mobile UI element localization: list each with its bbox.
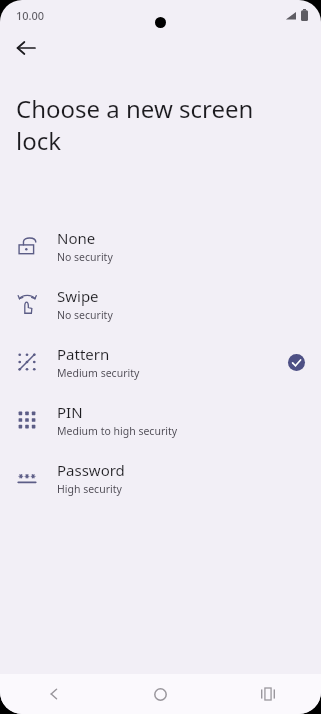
staticText: Swipe — [57, 286, 99, 306]
button[interactable]: Recent apps — [214, 674, 321, 714]
button[interactable]: Home — [107, 674, 214, 714]
staticText: Pattern — [57, 344, 110, 364]
button[interactable]: None — [0, 217, 321, 275]
staticText: No security — [57, 308, 113, 322]
staticText: Medium to high security — [57, 424, 178, 438]
button[interactable]: PIN — [0, 391, 321, 449]
button[interactable]: Back — [0, 674, 107, 714]
button[interactable]: Swipe — [0, 275, 321, 333]
staticText: PIN — [57, 402, 83, 422]
staticText: Medium security — [57, 366, 140, 380]
button[interactable]: Password — [0, 449, 321, 507]
staticText: Password — [57, 460, 125, 480]
staticText: No security — [57, 250, 113, 264]
staticText: Choose a new screen lock — [16, 92, 291, 157]
button[interactable]: Back — [6, 30, 46, 66]
staticText: None — [57, 228, 96, 248]
button[interactable]: Pattern — [0, 333, 321, 391]
staticText: High security — [57, 482, 122, 496]
staticText: 10.00 — [16, 8, 45, 23]
